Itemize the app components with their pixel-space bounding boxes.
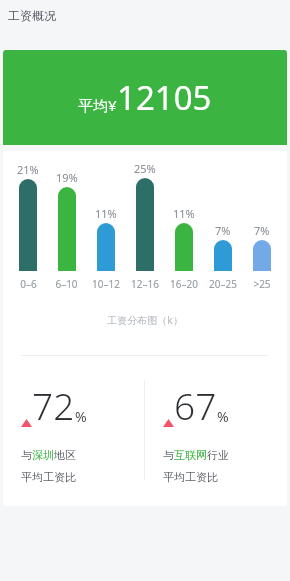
staticText: 工资概况 xyxy=(8,8,56,23)
staticText: 25% xyxy=(134,161,156,176)
staticText: 19% xyxy=(56,170,78,185)
staticText: 与互联网行业 xyxy=(163,448,229,462)
staticText: 16–20 xyxy=(170,277,198,291)
staticText: 20–25 xyxy=(209,277,237,291)
staticText: 12–16 xyxy=(131,277,159,291)
staticText: % xyxy=(75,407,87,426)
staticText: 67 xyxy=(174,380,217,430)
staticText: 工资分布图（k） xyxy=(3,313,287,327)
staticText: 6–10 xyxy=(55,277,78,291)
staticText: 0–6 xyxy=(20,277,37,291)
staticText: 平均工资比 xyxy=(163,470,218,484)
button[interactable]: 67 xyxy=(145,380,287,484)
staticText: 与深圳地区 xyxy=(21,448,76,462)
staticText: 11% xyxy=(173,206,195,221)
button[interactable]: 平均¥ xyxy=(3,50,287,145)
staticText: >25 xyxy=(253,277,271,291)
button[interactable]: 72 xyxy=(3,380,144,484)
staticText: 7% xyxy=(254,223,270,238)
staticText: 21% xyxy=(17,162,39,177)
staticText: 10–12 xyxy=(92,277,120,291)
staticText: % xyxy=(217,407,229,426)
staticText: 7% xyxy=(215,223,231,238)
staticText: 11% xyxy=(95,206,117,221)
staticText: 12105 xyxy=(117,75,212,120)
staticText: 平均¥ xyxy=(78,95,117,115)
staticText: 平均工资比 xyxy=(21,470,76,484)
staticText: 72 xyxy=(32,380,75,430)
